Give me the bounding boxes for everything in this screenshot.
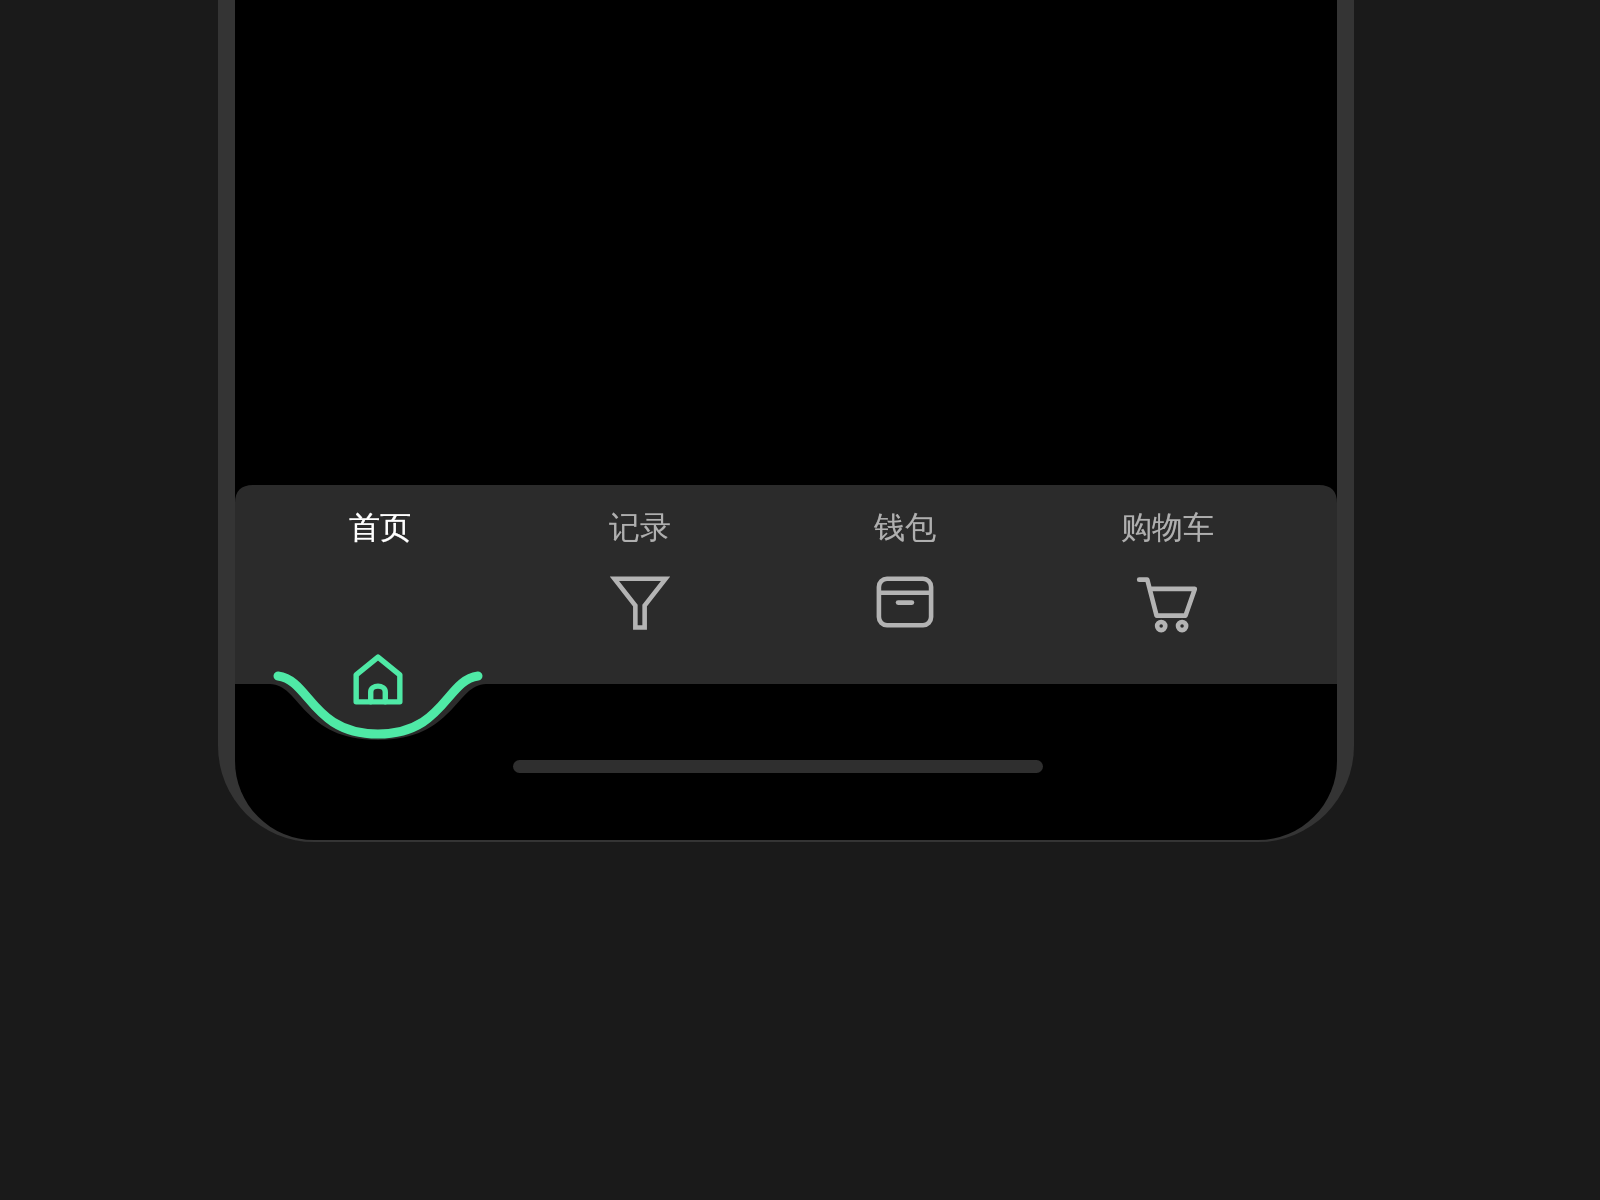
- button[interactable]: 购物车: [1062, 485, 1338, 684]
- button[interactable]: 记录: [511, 485, 787, 684]
- button[interactable]: 钱包: [786, 485, 1062, 684]
- staticText: 首页: [349, 508, 411, 547]
- button[interactable]: 首页: [235, 485, 511, 740]
- staticText: 记录: [609, 508, 671, 547]
- staticText: 钱包: [874, 508, 936, 547]
- staticText: 购物车: [1121, 508, 1214, 547]
